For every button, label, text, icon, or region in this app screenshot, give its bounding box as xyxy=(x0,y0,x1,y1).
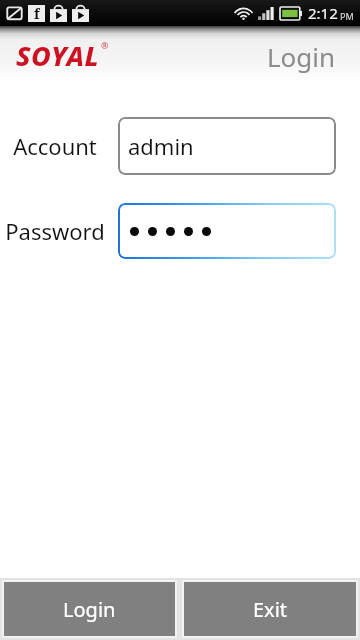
staticText: 2:12 xyxy=(308,3,338,23)
button[interactable]: Exit xyxy=(184,582,356,636)
staticText: SOYAL xyxy=(16,37,100,74)
staticText: f xyxy=(34,4,40,21)
button[interactable]: admin xyxy=(118,117,336,175)
staticText: admin xyxy=(128,131,194,161)
staticText: Password xyxy=(5,216,105,246)
staticText: PM xyxy=(340,10,354,22)
staticText: Login xyxy=(267,39,336,74)
button[interactable] xyxy=(118,203,336,259)
staticText: ® xyxy=(101,39,109,51)
staticText: Account xyxy=(13,131,97,161)
staticText: Exit xyxy=(253,596,288,623)
staticText: Login xyxy=(63,596,116,623)
button[interactable]: Login xyxy=(4,582,175,636)
